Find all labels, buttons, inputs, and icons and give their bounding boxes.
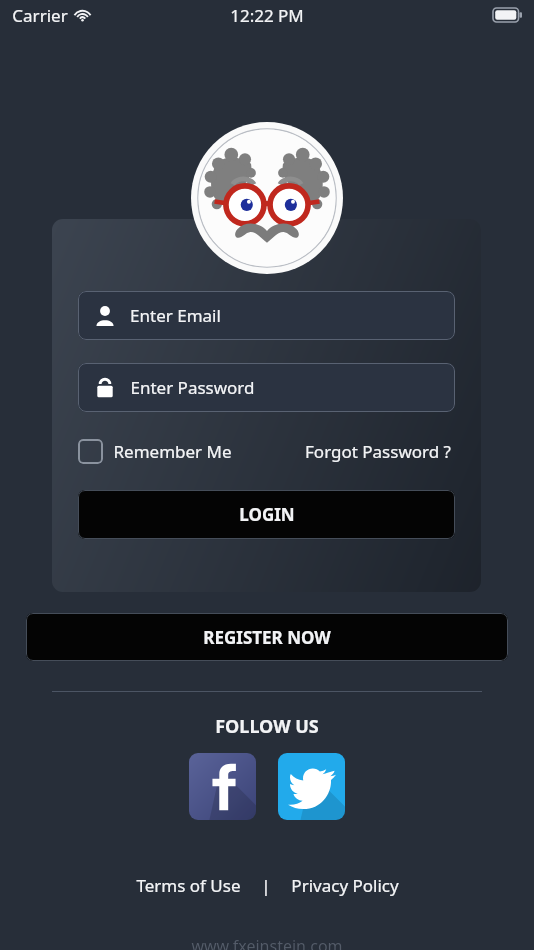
button[interactable]: REGISTER NOW bbox=[26, 613, 508, 661]
staticText: 12:22 PM bbox=[230, 4, 304, 27]
staticText: Remember Me bbox=[113, 440, 232, 463]
staticText: REGISTER NOW bbox=[203, 626, 331, 649]
button[interactable]: Facebook bbox=[189, 753, 256, 820]
staticText: FOLLOW US bbox=[215, 714, 319, 739]
staticText: Privacy Policy bbox=[291, 874, 399, 897]
button[interactable]: Privacy Policy bbox=[283, 870, 407, 901]
staticText: Terms of Use bbox=[136, 874, 241, 897]
button[interactable]: Enter Email bbox=[78, 291, 455, 340]
staticText: | bbox=[261, 874, 271, 897]
staticText: Carrier bbox=[12, 4, 68, 27]
staticText: LOGIN bbox=[239, 503, 295, 526]
button[interactable]: Enter Password bbox=[78, 363, 455, 412]
button[interactable]: Terms of Use bbox=[128, 870, 249, 901]
staticText: www.fxeinstein.com bbox=[191, 935, 343, 950]
button[interactable]: Twitter bbox=[278, 753, 345, 820]
staticText: Enter Password bbox=[130, 376, 255, 399]
button[interactable]: Forgot Password ? bbox=[301, 436, 455, 467]
button[interactable]: LOGIN bbox=[78, 490, 455, 539]
staticText: Forgot Password ? bbox=[305, 440, 451, 463]
staticText: Enter Email bbox=[130, 304, 221, 327]
button[interactable]: Remember Me bbox=[78, 439, 232, 464]
